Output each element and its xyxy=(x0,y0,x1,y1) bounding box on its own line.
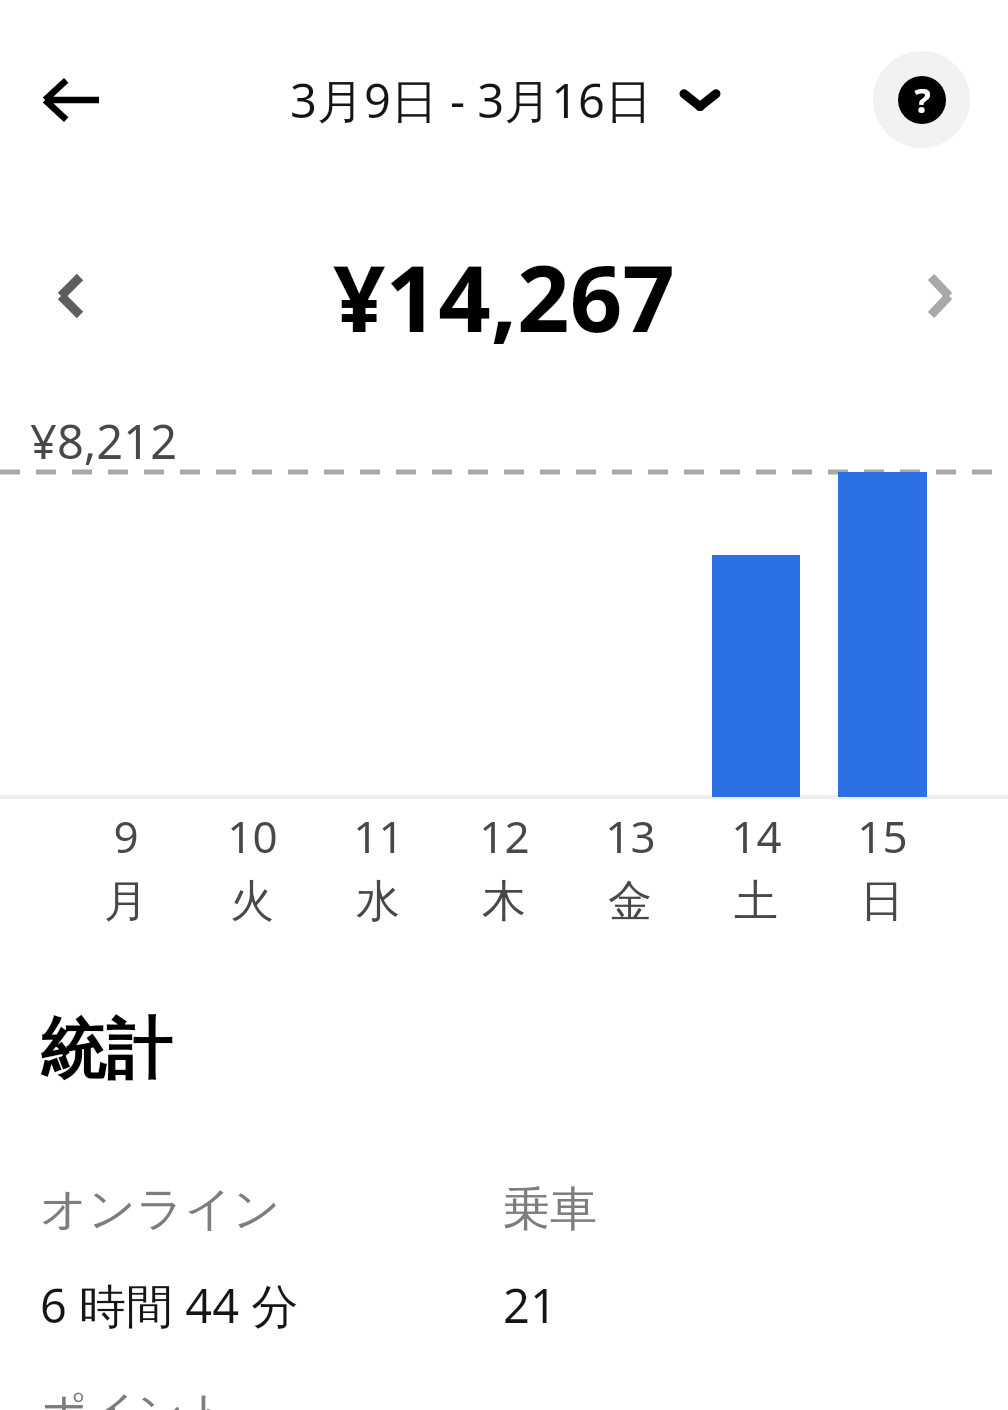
staticText: 10 xyxy=(227,806,278,866)
staticText: ¥14,267 xyxy=(333,234,675,359)
staticText: 土 xyxy=(734,874,778,929)
staticText: 11 xyxy=(353,806,404,866)
button[interactable]: 3月9日 - 3月16日 xyxy=(282,64,726,136)
staticText: 9 xyxy=(113,806,139,866)
staticText: ¥8,212 xyxy=(30,409,178,473)
staticText: 12 xyxy=(479,806,530,866)
staticText: 21 xyxy=(503,1273,557,1337)
staticText: 統計 xyxy=(40,1008,172,1091)
staticText: 3月9日 - 3月16日 xyxy=(290,68,652,132)
staticText: 金 xyxy=(608,874,652,929)
button[interactable]: 11 xyxy=(315,806,441,929)
staticText: 乗車 xyxy=(503,1180,597,1239)
button[interactable]: 乗車 xyxy=(503,1180,943,1337)
staticText: ? xyxy=(914,77,931,123)
staticText: ポイント xyxy=(40,1384,233,1410)
staticText: 火 xyxy=(230,874,274,929)
staticText: 日 xyxy=(860,874,904,929)
staticText: 14 xyxy=(731,806,782,866)
button[interactable]: 12 xyxy=(441,806,567,929)
staticText: 13 xyxy=(605,806,656,866)
button[interactable]: オンライン xyxy=(40,1180,480,1337)
staticText: 15 xyxy=(857,806,908,866)
staticText: 月 xyxy=(104,874,148,929)
staticText: オンライン xyxy=(40,1180,281,1239)
button[interactable]: Help xyxy=(873,51,970,148)
button[interactable]: 15 xyxy=(819,806,945,929)
staticText: 木 xyxy=(482,874,526,929)
button[interactable]: 9 xyxy=(63,806,189,929)
button[interactable]: Previous week xyxy=(24,250,116,342)
staticText: 水 xyxy=(356,874,400,929)
button[interactable]: Next week xyxy=(894,250,986,342)
button[interactable]: 14 xyxy=(693,806,819,929)
button[interactable]: 10 xyxy=(189,806,315,929)
button[interactable]: 13 xyxy=(567,806,693,929)
button[interactable]: Back xyxy=(22,50,122,150)
staticText: 6 時間 44 分 xyxy=(40,1273,299,1337)
